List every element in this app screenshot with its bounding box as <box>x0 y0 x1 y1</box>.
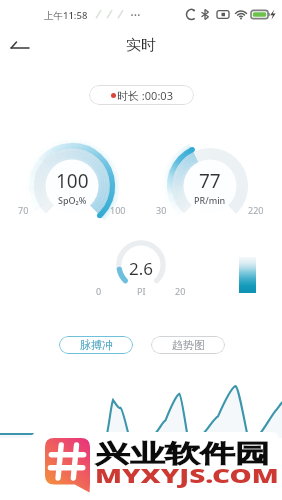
staticText: 实时 <box>126 36 156 55</box>
staticText: PI <box>137 285 146 297</box>
button[interactable]: 趋势图 <box>151 336 225 354</box>
staticText: 上午11:58 <box>44 9 88 22</box>
staticText: 2.6 <box>129 257 154 280</box>
staticText: 0 <box>96 285 102 297</box>
button[interactable]: 脉搏冲 <box>59 336 133 354</box>
staticText: 100 <box>56 168 89 194</box>
button[interactable]: 时长 :00:03 <box>89 85 194 105</box>
staticText: SpO₂% <box>58 194 87 206</box>
staticText: PR/min <box>194 194 226 206</box>
staticText: 100 <box>110 204 126 216</box>
staticText: 77 <box>199 168 221 194</box>
staticText: 兴业软件园 <box>95 439 270 470</box>
staticText: 70 <box>18 204 29 216</box>
staticText: 20 <box>175 285 186 297</box>
staticText: MYXYJS.COM <box>95 462 279 488</box>
staticText: 30 <box>156 204 167 216</box>
staticText: 时长 :00:03 <box>117 88 173 103</box>
staticText: 趋势图 <box>172 338 205 352</box>
button[interactable]: Back <box>4 33 38 63</box>
staticText: 220 <box>248 204 264 216</box>
staticText: 脉搏冲 <box>80 338 113 352</box>
